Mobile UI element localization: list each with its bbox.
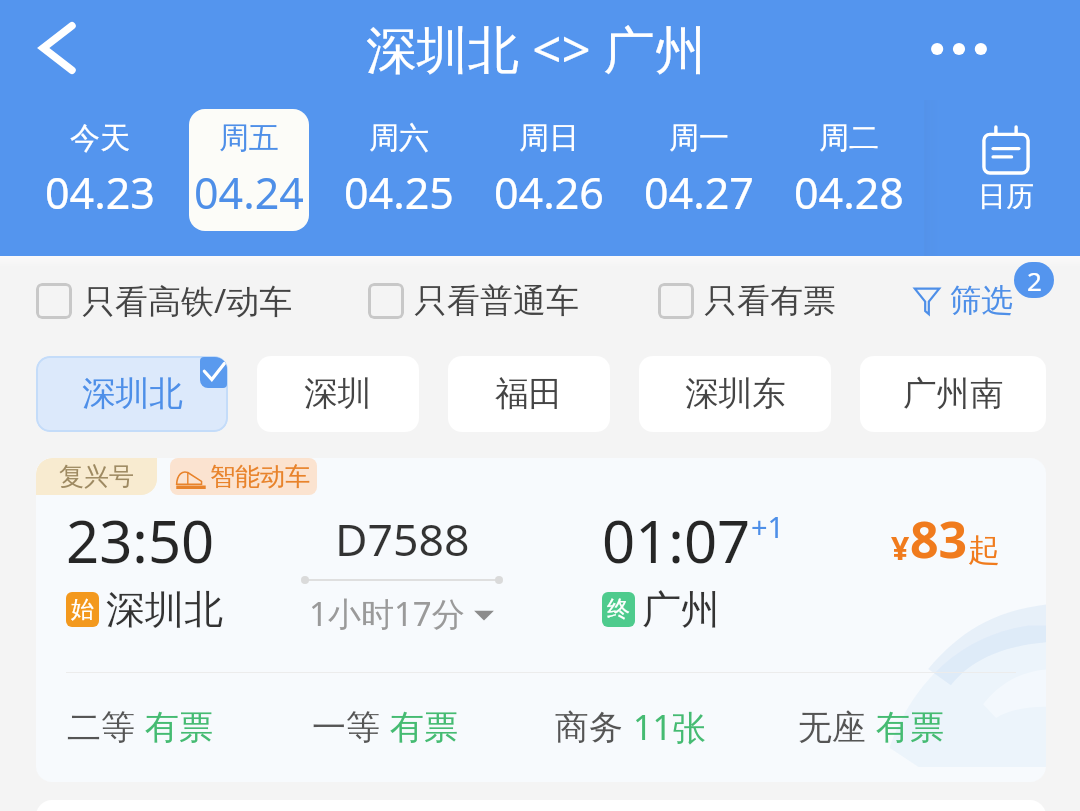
button[interactable]: 一等 [312, 706, 458, 749]
staticText: 今天 [70, 119, 130, 157]
staticText: 复兴号 [59, 461, 134, 492]
staticText: 深圳东 [685, 373, 786, 415]
staticText: 有票 [145, 706, 213, 749]
staticText: 04.24 [194, 163, 304, 222]
staticText: 有票 [390, 706, 458, 749]
staticText: 智能动车 [210, 461, 310, 492]
staticText: 83 [910, 505, 968, 573]
staticText: 日历 [978, 179, 1034, 214]
staticText: 终 [607, 595, 630, 624]
staticText: 周五 [219, 119, 279, 157]
staticText: 2 [1027, 263, 1042, 298]
staticText: 周二 [819, 119, 879, 157]
button[interactable]: Back [24, 18, 84, 78]
staticText: 1小时17分 [309, 591, 465, 636]
button[interactable]: 广州南 [860, 356, 1046, 432]
button[interactable]: 深圳东 [639, 356, 831, 432]
button[interactable]: 周二 [774, 100, 924, 256]
button[interactable]: 商务 [555, 704, 706, 750]
staticText: 深圳北 [82, 373, 183, 415]
button[interactable]: 二等 [67, 706, 213, 749]
staticText: 广州南 [903, 373, 1004, 415]
staticText: 二等 [67, 706, 135, 749]
button[interactable]: 只看普通车 [368, 280, 579, 322]
staticText: D7588 [335, 508, 470, 569]
staticText: 01:07 [602, 501, 751, 580]
staticText: 04.26 [494, 163, 604, 222]
staticText: 福田 [495, 373, 563, 415]
button[interactable]: More options [933, 30, 985, 70]
staticText: 一等 [312, 706, 380, 749]
staticText: 深圳北 <> 广州 [366, 13, 706, 83]
staticText: 周日 [519, 119, 579, 157]
staticText: 周六 [369, 119, 429, 157]
staticText: +1 [751, 507, 785, 546]
button[interactable]: 只看有票 [658, 280, 836, 322]
button[interactable]: 复兴号 [36, 458, 1046, 782]
staticText: 23:50 [66, 501, 215, 580]
button[interactable]: 周五 [174, 100, 324, 256]
staticText: 起 [968, 530, 1000, 570]
button[interactable]: 周日 [474, 100, 624, 256]
button[interactable]: 无座 [798, 706, 944, 749]
staticText: 深圳 [304, 373, 372, 415]
staticText: 04.25 [344, 163, 454, 222]
button[interactable]: 深圳 [257, 356, 419, 432]
staticText: 深圳北 [106, 585, 223, 634]
staticText: 广州 [642, 585, 720, 634]
staticText: 无座 [798, 706, 866, 749]
staticText: 04.28 [794, 163, 904, 222]
button[interactable]: 周一 [624, 100, 774, 256]
staticText: 只看高铁/动车 [82, 278, 293, 323]
staticText: 周一 [669, 119, 729, 157]
staticText: 只看有票 [704, 280, 836, 322]
button[interactable]: 周六 [324, 100, 474, 256]
button[interactable]: Calendar [924, 100, 1080, 256]
button[interactable]: 今天 [25, 100, 174, 256]
staticText: 始 [71, 595, 94, 624]
staticText: 04.23 [45, 163, 155, 222]
staticText: 筛选 [950, 281, 1014, 321]
button[interactable]: 福田 [448, 356, 610, 432]
button[interactable]: 筛选 [914, 281, 1014, 321]
staticText: 04.27 [644, 163, 754, 222]
button[interactable]: 只看高铁/动车 [36, 278, 293, 323]
button[interactable]: 深圳北 [36, 356, 228, 432]
staticText: 11张 [633, 704, 706, 750]
staticText: ¥ [891, 526, 910, 570]
staticText: 商务 [555, 706, 623, 749]
staticText: 有票 [876, 706, 944, 749]
staticText: 只看普通车 [414, 280, 579, 322]
